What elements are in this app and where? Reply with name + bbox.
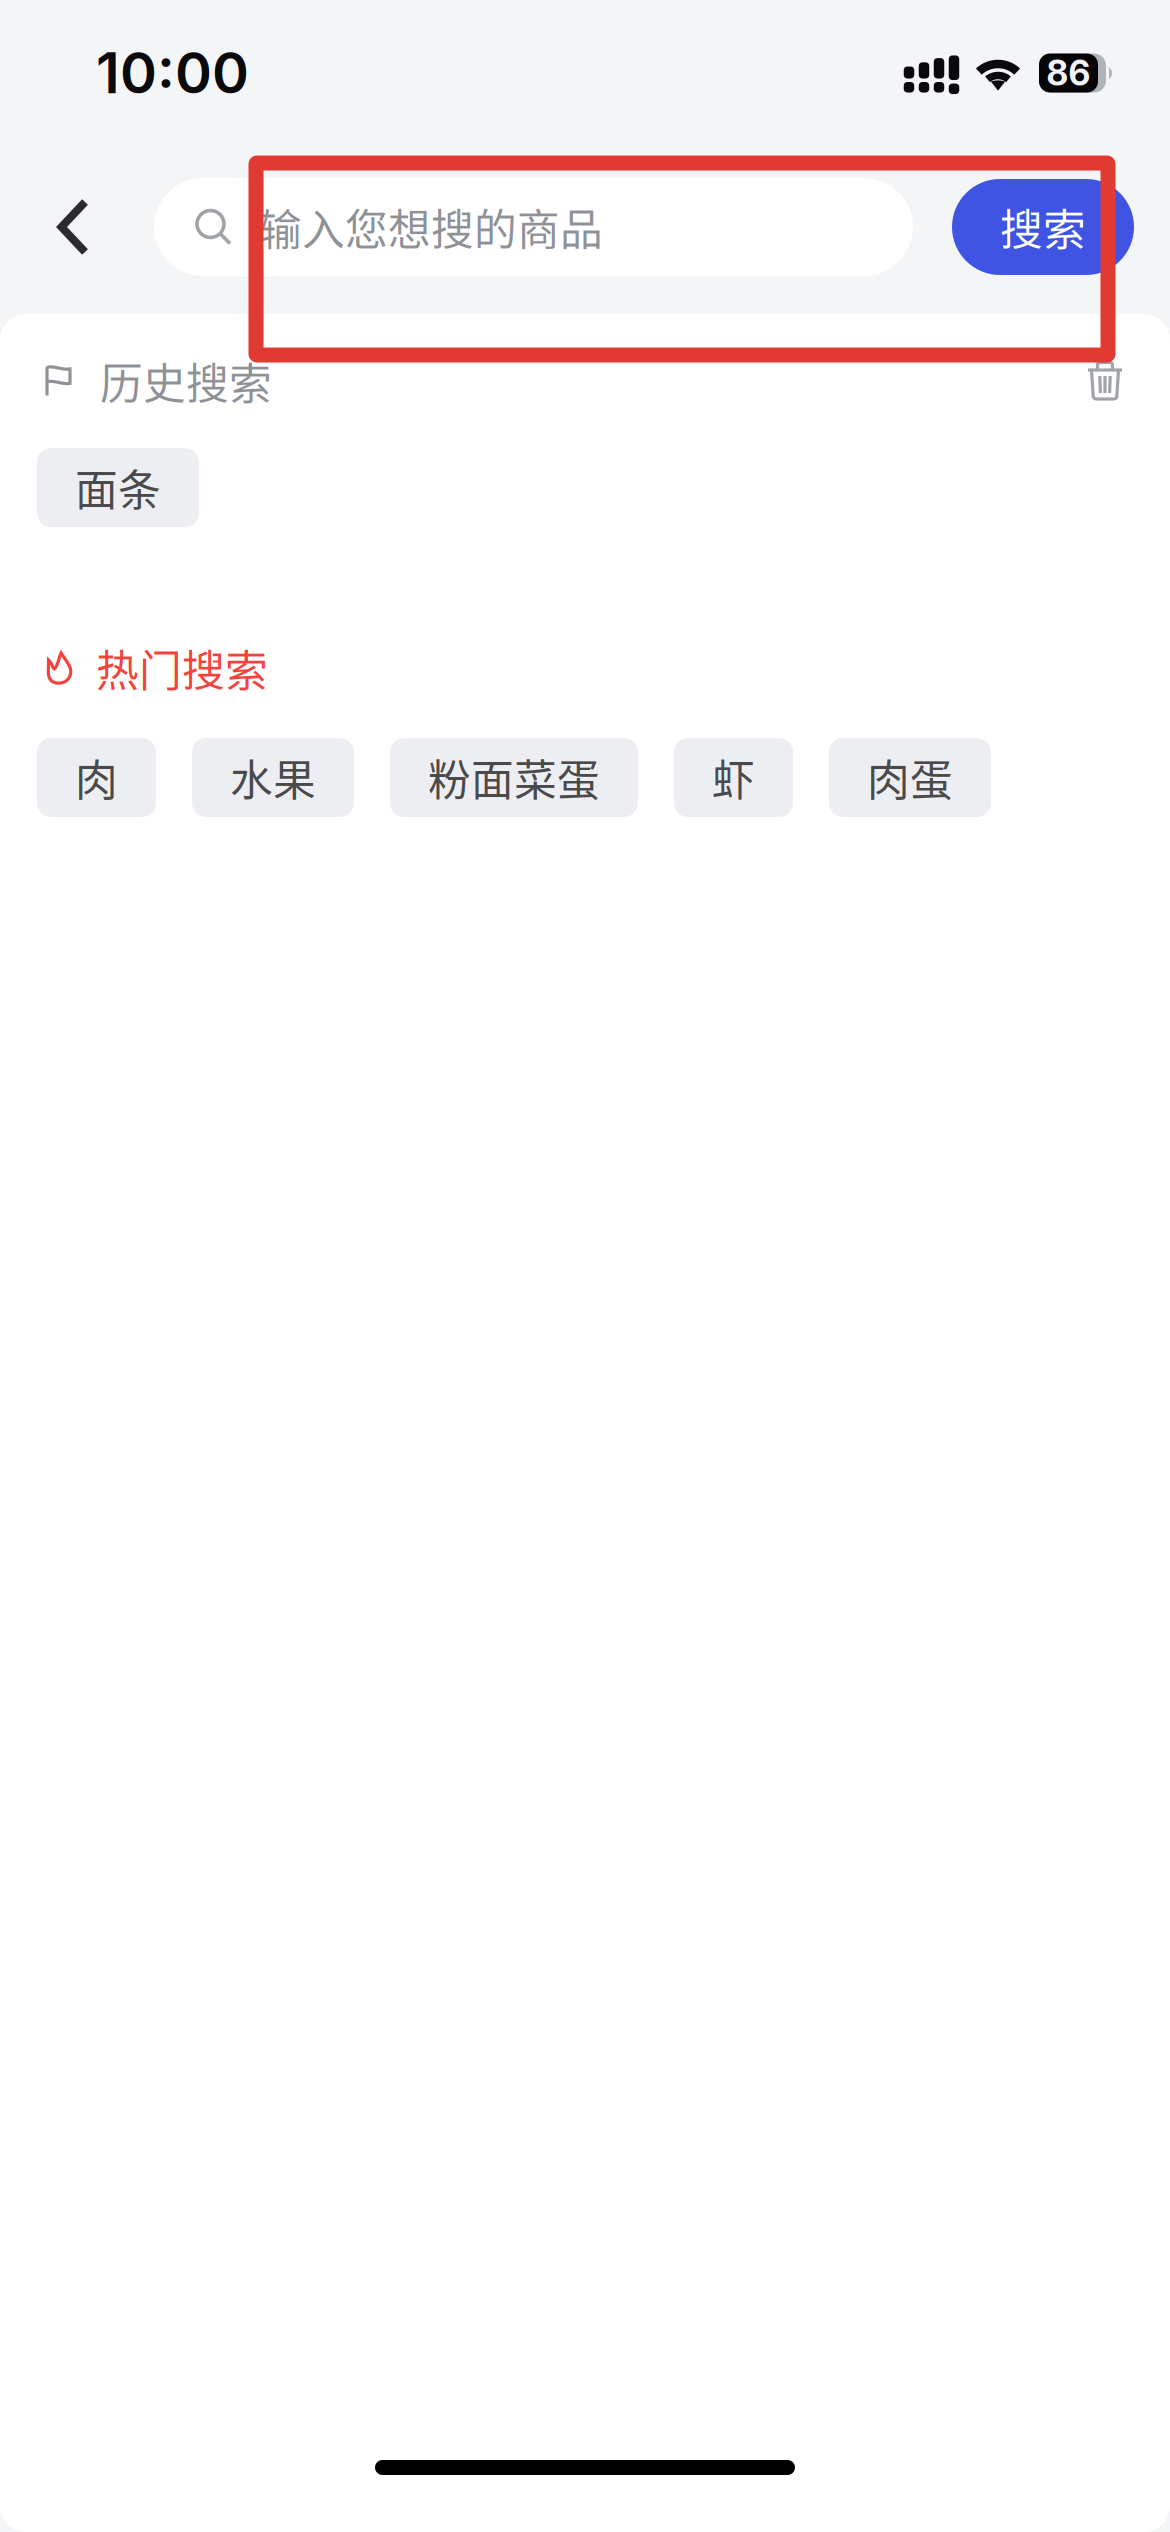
staticText: 面条: [75, 457, 161, 518]
staticText: 水果: [230, 747, 316, 808]
staticText: 虾: [712, 747, 755, 808]
staticText: 肉: [75, 747, 118, 808]
staticText: 10:00: [96, 39, 249, 107]
staticText: 输入您想搜的商品: [259, 196, 603, 258]
button[interactable]: 输入您想搜的商品: [154, 178, 913, 276]
staticText: 搜索: [1000, 196, 1086, 258]
button[interactable]: 肉蛋: [829, 738, 991, 817]
button[interactable]: 虾: [674, 738, 793, 817]
staticText: 历史搜索: [100, 350, 272, 412]
button[interactable]: Clear search history: [1086, 360, 1124, 401]
button[interactable]: 粉面菜蛋: [390, 738, 638, 817]
staticText: 86: [1046, 52, 1090, 94]
staticText: 肉蛋: [867, 747, 953, 808]
staticText: 粉面菜蛋: [428, 747, 600, 808]
button[interactable]: 搜索: [952, 179, 1134, 275]
staticText: 热门搜索: [96, 637, 268, 699]
button[interactable]: 水果: [192, 738, 354, 817]
button[interactable]: 肉: [37, 738, 156, 817]
button[interactable]: 面条: [37, 448, 199, 527]
button[interactable]: Back: [0, 178, 154, 276]
